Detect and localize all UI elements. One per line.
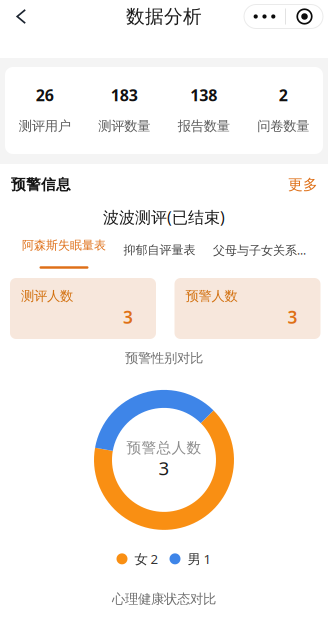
staticText: 女 2 [134, 550, 158, 568]
staticText: 183 [111, 84, 138, 106]
staticText: 测评人数 [21, 288, 73, 304]
staticText: 预警性别对比 [125, 350, 203, 366]
staticText: 3 [123, 305, 133, 328]
staticText: 数据分析 [126, 5, 202, 28]
staticText: 3 [287, 305, 297, 328]
staticText: 3 [158, 455, 169, 480]
staticText: 抑郁自评量表 [123, 243, 195, 257]
staticText: 预警总人数 [126, 439, 201, 457]
staticText: 男 1 [187, 550, 211, 568]
staticText: 测评数量 [98, 118, 150, 134]
staticText: 更多 [288, 175, 318, 193]
button[interactable]: 父母与子女关系... [213, 229, 306, 271]
staticText: 138 [190, 84, 217, 106]
staticText: 2 [279, 84, 288, 106]
staticText: 26 [36, 84, 54, 106]
staticText: 父母与子女关系... [213, 242, 306, 258]
staticText: 预警人数 [185, 288, 237, 304]
staticText: 心理健康状态对比 [112, 591, 216, 607]
button[interactable]: 更多 [288, 169, 318, 199]
staticText: 报告数量 [178, 118, 230, 134]
staticText: 问卷数量 [257, 118, 309, 134]
button[interactable]: 阿森斯失眠量表 [22, 229, 106, 272]
button[interactable]: 更多功能 [244, 4, 323, 28]
button[interactable]: 返回 [8, 1, 36, 31]
staticText: 阿森斯失眠量表 [22, 238, 106, 253]
staticText: 测评用户 [19, 118, 71, 134]
staticText: 预警信息 [11, 175, 71, 193]
button[interactable]: 抑郁自评量表 [123, 229, 195, 271]
staticText: 波波测评(已结束) [103, 206, 225, 228]
